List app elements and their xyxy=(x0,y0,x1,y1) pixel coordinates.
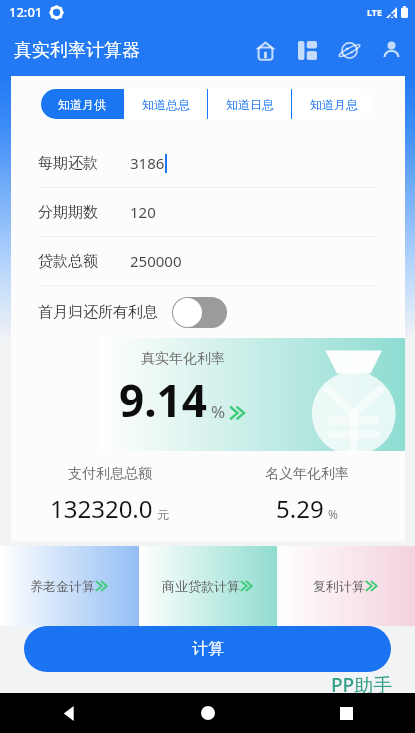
staticText: 12:01 xyxy=(9,3,43,21)
button[interactable]: 养老金计算 xyxy=(0,546,139,626)
button[interactable]: Recents xyxy=(277,693,415,733)
button[interactable]: Modules xyxy=(291,34,323,66)
button[interactable]: 复利计算 xyxy=(277,546,415,626)
staticText: 知道月供 xyxy=(58,97,106,112)
button[interactable]: 每期还款 xyxy=(11,139,405,187)
staticText: 养老金计算 xyxy=(30,578,95,594)
staticText: 3186 xyxy=(130,153,165,173)
button[interactable]: 名义年化利率 xyxy=(208,465,405,525)
button[interactable]: Home xyxy=(249,34,281,66)
staticText: 250000 xyxy=(130,251,182,271)
button[interactable]: 知道月供 xyxy=(41,89,123,119)
staticText: 知道月息 xyxy=(310,97,358,112)
button[interactable]: 真实年化利率 xyxy=(99,338,405,451)
button[interactable]: Profile xyxy=(375,34,407,66)
staticText: 支付利息总额 xyxy=(68,465,152,483)
staticText: 复利计算 xyxy=(313,578,365,594)
button[interactable]: Home xyxy=(139,693,277,733)
button[interactable]: 贷款总额 xyxy=(11,237,405,285)
staticText: 132320.0 xyxy=(50,492,153,525)
staticText: PP助手 xyxy=(331,672,393,693)
button[interactable]: 知道日息 xyxy=(208,89,291,119)
button[interactable]: 支付利息总额 xyxy=(11,465,208,525)
staticText: LTE xyxy=(367,6,383,18)
staticText: % xyxy=(328,506,338,522)
button[interactable]: 知道总息 xyxy=(124,89,207,119)
staticText: 真实利率计算器 xyxy=(14,39,140,62)
staticText: 名义年化利率 xyxy=(265,465,349,483)
staticText: 分期期数 xyxy=(38,203,98,222)
staticText: 元 xyxy=(157,507,169,522)
staticText: 120 xyxy=(130,202,156,222)
staticText: 9.14 xyxy=(119,370,207,430)
staticText: 贷款总额 xyxy=(38,252,98,271)
button[interactable]: 计算 xyxy=(24,626,391,672)
staticText: 知道日息 xyxy=(226,97,274,112)
button[interactable]: 知道月息 xyxy=(292,89,375,119)
button[interactable]: 商业贷款计算 xyxy=(139,546,277,626)
button[interactable]: Back xyxy=(0,693,139,733)
staticText: 计算 xyxy=(192,639,224,659)
button[interactable]: 分期期数 xyxy=(11,188,405,236)
staticText: 商业贷款计算 xyxy=(162,578,240,594)
staticText: 每期还款 xyxy=(38,154,98,173)
staticText: 首月归还所有利息 xyxy=(38,303,158,322)
staticText: 真实年化利率 xyxy=(141,350,225,368)
staticText: % xyxy=(211,400,226,423)
button[interactable]: Discover xyxy=(333,34,365,66)
staticText: 知道总息 xyxy=(142,97,190,112)
staticText: 5.29 xyxy=(276,492,324,525)
button[interactable]: 首月归还所有利息 xyxy=(11,286,405,338)
